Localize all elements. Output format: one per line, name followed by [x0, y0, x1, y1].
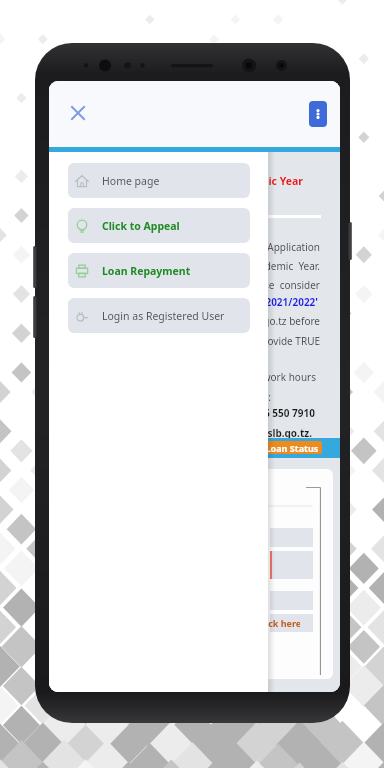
button[interactable]: Loan Repayment	[68, 253, 250, 288]
staticText: you provide TRUE	[237, 334, 320, 348]
staticText: Loan Repayment	[102, 264, 191, 278]
staticText: info@heslb.go.tz.	[226, 426, 312, 440]
staticText: This is the Loan Application	[191, 240, 320, 254]
button[interactable]: Click to Appeal	[68, 208, 250, 243]
staticText: 0736 550 7910	[246, 406, 315, 420]
staticText: Check Loan Status	[236, 442, 319, 454]
staticText: During work hours	[227, 370, 316, 384]
staticText: Login as Registered User	[102, 309, 225, 323]
staticText: Click to Appeal	[102, 219, 180, 233]
button[interactable]: Check Loan Status	[233, 441, 322, 454]
button[interactable]: Home page	[68, 163, 250, 198]
staticText: Click here	[257, 617, 300, 629]
button[interactable]: Login as Registered User	[68, 298, 250, 333]
staticText: Important Notice for Academic Year	[113, 174, 303, 188]
staticText: Please consider	[244, 278, 320, 292]
staticText: Home page	[102, 174, 160, 188]
button[interactable]: More options	[309, 101, 327, 127]
staticText: by :	[254, 390, 271, 404]
staticText: for the Academic Year.	[213, 259, 320, 273]
staticText: info.heslb.go.tz before	[214, 314, 320, 328]
staticText: '2021/2022'	[262, 295, 318, 309]
button[interactable]: Close	[70, 105, 86, 121]
